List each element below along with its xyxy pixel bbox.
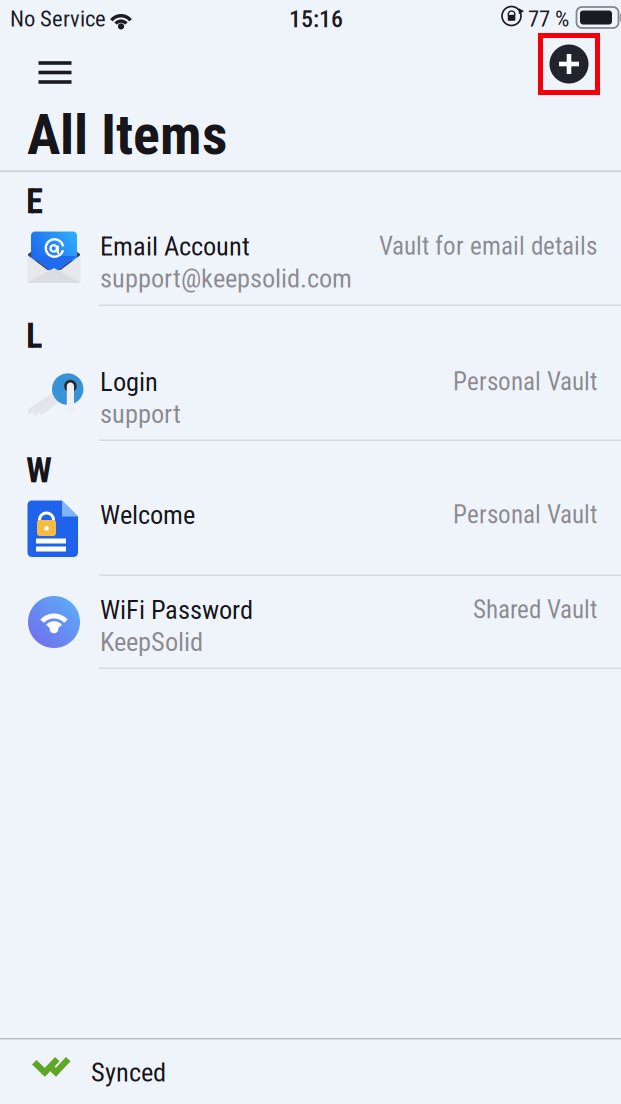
staticText: Personal Vault [453,500,597,529]
button[interactable]: Menu [0,0,62,46]
staticText: Email Account [100,231,250,262]
button[interactable]: Welcome [0,441,621,576]
staticText: KeepSolid [100,626,203,657]
staticText: support@keepsolid.com [100,263,352,294]
staticText: All Items [27,102,227,168]
staticText: Login [100,366,158,397]
staticText: E [26,181,43,222]
staticText: 77 % [528,5,569,32]
staticText: Vault for email details [379,231,597,261]
button[interactable]: WiFi Password [0,576,621,669]
staticText: Shared Vault [473,595,597,624]
staticText: Synced [91,1057,166,1088]
staticText: WiFi Password [100,594,253,625]
staticText: No Service [10,5,106,32]
staticText: L [26,315,43,356]
button[interactable]: Login [0,306,621,441]
staticText: W [26,450,52,491]
staticText: 15:16 [289,5,343,33]
staticText: Welcome [100,499,195,530]
button[interactable]: Add item [0,0,58,58]
staticText: Personal Vault [453,367,597,396]
button[interactable]: Email Account [0,171,621,306]
staticText: support [100,398,181,429]
